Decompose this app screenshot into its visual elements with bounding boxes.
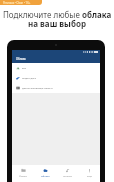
button[interactable]: Облака	[34, 165, 56, 182]
staticText: Другое хранилище WebDAV	[22, 87, 53, 90]
staticText: облака	[82, 9, 112, 20]
staticText: Облака	[16, 57, 26, 61]
button[interactable]: Реклама	[0, 0, 42, 5]
button[interactable]: Другое хранилище WebDAV	[12, 83, 100, 93]
staticText: Подключите любые	[3, 9, 82, 20]
staticText: Музыка	[63, 174, 72, 177]
staticText: Файлы	[19, 174, 27, 177]
staticText: Реклама • Ozon • 16+	[3, 1, 31, 5]
staticText: на ваш выбор	[28, 18, 86, 29]
button[interactable]: Box	[12, 63, 100, 73]
staticText: Ещё	[87, 174, 92, 177]
staticText: Облака	[41, 174, 50, 177]
staticText: Яндекс.Диск	[22, 77, 36, 80]
button[interactable]: Ещё	[78, 165, 100, 182]
button[interactable]: Яндекс.Диск	[12, 73, 100, 83]
staticText: Box	[22, 67, 27, 70]
button[interactable]: Файлы	[12, 165, 34, 182]
button[interactable]: Музыка	[56, 165, 78, 182]
